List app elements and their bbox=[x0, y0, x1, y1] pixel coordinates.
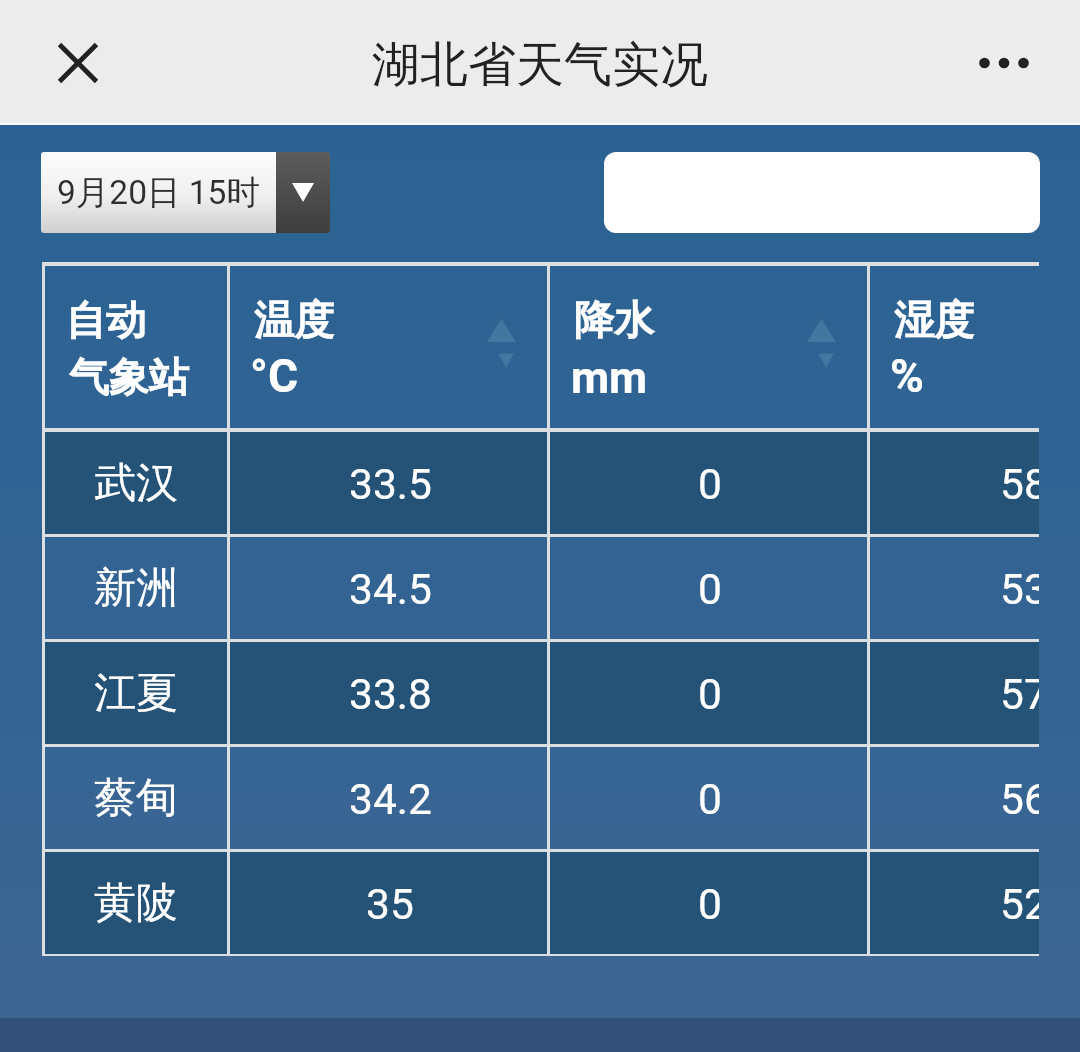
button[interactable]: 0 bbox=[550, 642, 870, 744]
staticText: 湿度 bbox=[894, 295, 974, 345]
staticText: 34.2 bbox=[349, 775, 432, 825]
staticText: 35 bbox=[366, 880, 414, 930]
staticText: 0 bbox=[698, 670, 722, 720]
button[interactable]: 湿度 bbox=[870, 266, 1039, 428]
staticText: 33.5 bbox=[349, 460, 432, 510]
staticText: 9月20日 15时 bbox=[57, 172, 260, 214]
button[interactable] bbox=[604, 152, 1040, 233]
button[interactable]: 34.5 bbox=[230, 537, 550, 639]
staticText: 降水 bbox=[574, 295, 654, 345]
staticText: 34.5 bbox=[349, 565, 432, 615]
button[interactable]: 33.8 bbox=[230, 642, 550, 744]
staticText: 温度 bbox=[254, 295, 334, 345]
button[interactable]: 自动 bbox=[42, 266, 230, 428]
staticText: 0 bbox=[698, 775, 722, 825]
button[interactable]: 52 bbox=[864, 852, 1039, 954]
button[interactable]: 0 bbox=[550, 432, 870, 534]
staticText: 0 bbox=[698, 565, 722, 615]
staticText: 58 bbox=[1000, 460, 1039, 510]
button[interactable]: 53 bbox=[864, 537, 1039, 639]
staticText: 自动 bbox=[66, 295, 146, 345]
staticText: 新洲 bbox=[94, 562, 178, 615]
button[interactable]: 新洲 bbox=[42, 537, 230, 639]
button[interactable]: 33.5 bbox=[230, 432, 550, 534]
staticText: 0 bbox=[698, 460, 722, 510]
staticText: 气象站 bbox=[69, 352, 189, 402]
button[interactable]: More options bbox=[966, 25, 1042, 101]
button[interactable]: 56 bbox=[864, 747, 1039, 849]
staticText: 武汉 bbox=[94, 457, 178, 510]
button[interactable]: 0 bbox=[550, 747, 870, 849]
button[interactable]: 0 bbox=[550, 537, 870, 639]
staticText: 56 bbox=[1000, 775, 1039, 825]
button[interactable]: 9月20日 15时 bbox=[41, 152, 330, 233]
staticText: 黄陂 bbox=[94, 877, 178, 930]
staticText: mm bbox=[571, 352, 648, 404]
staticText: % bbox=[890, 349, 924, 403]
button[interactable]: 57 bbox=[864, 642, 1039, 744]
staticText: 江夏 bbox=[94, 667, 178, 720]
staticText: 蔡甸 bbox=[94, 772, 178, 825]
button[interactable]: 蔡甸 bbox=[42, 747, 230, 849]
staticText: °C bbox=[250, 349, 298, 403]
button[interactable]: 江夏 bbox=[42, 642, 230, 744]
button[interactable]: 降水 bbox=[550, 266, 870, 428]
staticText: 湖北省天气实况 bbox=[372, 35, 708, 95]
staticText: 33.8 bbox=[349, 670, 432, 720]
button[interactable]: 35 bbox=[230, 852, 550, 954]
button[interactable]: 58 bbox=[864, 432, 1039, 534]
button[interactable]: 黄陂 bbox=[42, 852, 230, 954]
button[interactable]: 武汉 bbox=[42, 432, 230, 534]
staticText: 52 bbox=[1000, 880, 1039, 930]
button[interactable]: 34.2 bbox=[230, 747, 550, 849]
button[interactable]: 温度 bbox=[230, 266, 550, 428]
staticText: 0 bbox=[698, 880, 722, 930]
button[interactable]: 0 bbox=[550, 852, 870, 954]
button[interactable]: Close bbox=[40, 25, 116, 101]
staticText: 53 bbox=[1000, 565, 1039, 615]
staticText: 57 bbox=[1000, 670, 1039, 720]
